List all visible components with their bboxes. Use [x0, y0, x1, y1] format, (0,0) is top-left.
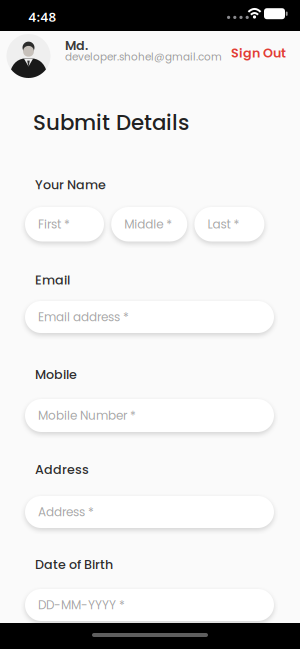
staticText: 4:48: [28, 8, 56, 25]
button[interactable]: Mobile Number *: [25, 399, 274, 432]
staticText: Sign Out: [231, 44, 286, 62]
staticText: Md.: [65, 37, 88, 54]
button[interactable]: Address *: [25, 496, 274, 528]
button[interactable]: Last *: [194, 207, 264, 241]
staticText: Middle *: [124, 216, 172, 233]
staticText: Submit Details: [33, 107, 189, 137]
button[interactable]: Email address *: [25, 301, 274, 333]
staticText: Address *: [38, 504, 94, 520]
staticText: Mobile Number *: [38, 407, 136, 424]
staticText: Last *: [207, 216, 239, 233]
staticText: Email address *: [38, 309, 129, 325]
button[interactable]: Middle *: [111, 207, 187, 241]
button[interactable]: DD-MM-YYYY *: [25, 589, 274, 621]
staticText: Email: [35, 271, 70, 289]
staticText: Date of Birth: [35, 556, 113, 573]
staticText: Address: [35, 461, 89, 478]
staticText: First *: [38, 216, 70, 233]
staticText: developer.shohel@gmail.com: [65, 50, 222, 64]
staticText: DD-MM-YYYY *: [38, 597, 125, 613]
staticText: Your Name: [35, 176, 106, 194]
staticText: Mobile: [35, 366, 77, 383]
button[interactable]: Sign Out: [231, 44, 286, 62]
button[interactable]: First *: [25, 207, 104, 241]
